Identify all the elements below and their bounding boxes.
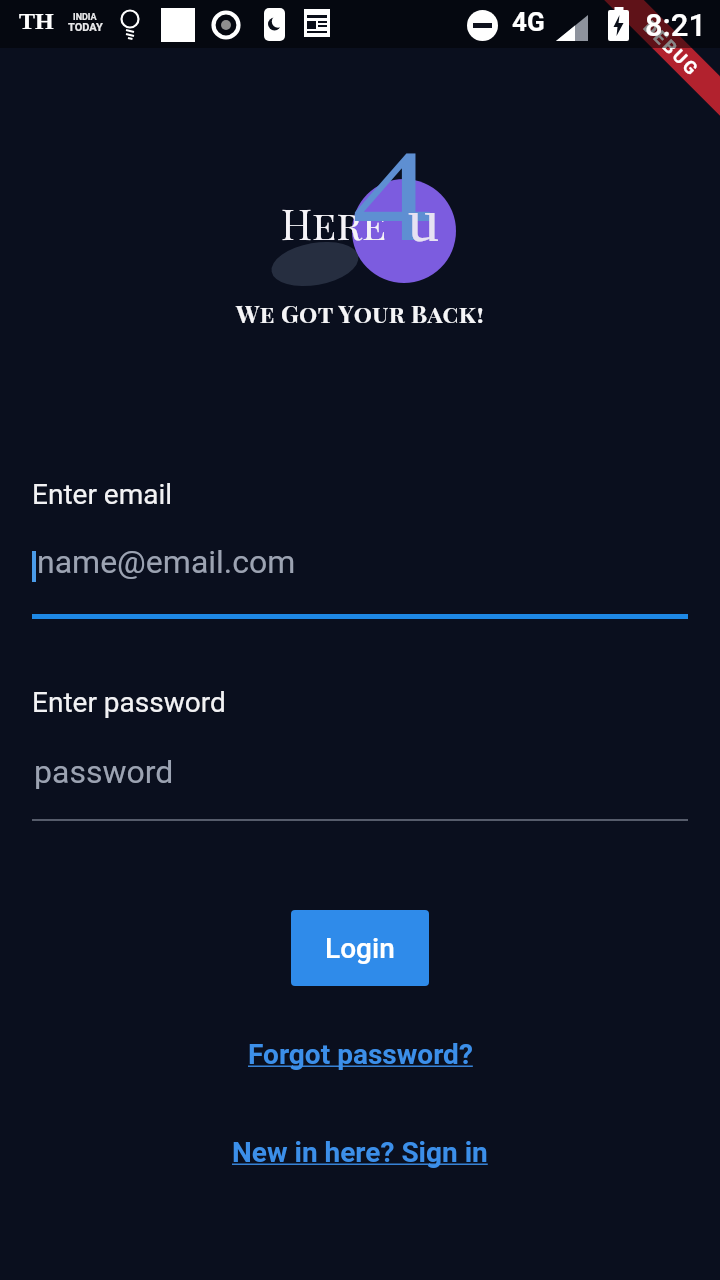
staticText: INDIA [73, 12, 97, 23]
staticText: DEBUG [639, 16, 704, 80]
staticText: 4G [512, 7, 545, 37]
staticText: We Got Your Back! [236, 297, 485, 329]
staticText: u [408, 186, 439, 255]
staticText: password [34, 753, 174, 791]
staticText: Enter email [32, 478, 173, 511]
staticText: name@email.com [37, 543, 296, 581]
button[interactable] [32, 744, 688, 821]
staticText: TODAY [68, 21, 103, 34]
button[interactable]: Forgot password? [248, 1038, 473, 1071]
staticText: Enter password [32, 686, 226, 719]
button[interactable]: New in here? Sign in [232, 1136, 488, 1169]
staticText: 4 [352, 122, 432, 268]
staticText: Login [325, 932, 395, 965]
staticText: 8:21 [645, 7, 707, 43]
button[interactable]: Login [291, 910, 429, 986]
button[interactable] [32, 536, 688, 619]
staticText: TH [19, 8, 54, 35]
staticText: Here [281, 196, 387, 251]
